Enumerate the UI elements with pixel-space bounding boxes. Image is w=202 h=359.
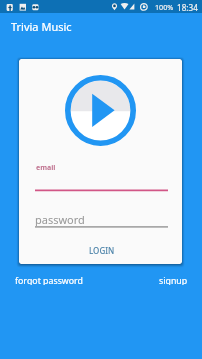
staticText: LOGIN [89, 245, 115, 256]
button[interactable]: email [35, 163, 168, 190]
button[interactable]: LOGIN [20, 240, 182, 260]
button[interactable]: password [35, 212, 168, 228]
staticText: signup [159, 275, 188, 285]
staticText: password [35, 212, 85, 227]
button[interactable]: Play [65, 75, 136, 146]
staticText: Trivia Music [11, 19, 72, 34]
staticText: 100% [155, 2, 174, 12]
staticText: forgot password [15, 275, 83, 285]
staticText: 18:34 [177, 2, 198, 13]
button[interactable]: signup [155, 272, 202, 288]
button[interactable]: forgot password [0, 272, 87, 288]
staticText: email [36, 163, 56, 173]
